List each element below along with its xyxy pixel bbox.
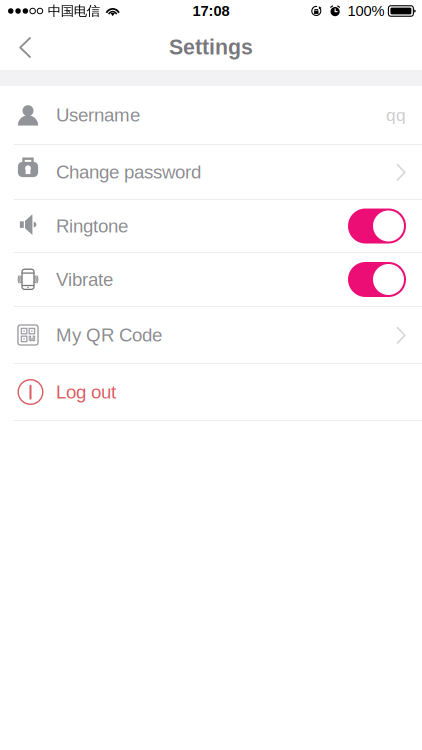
staticText: Vibrate bbox=[56, 269, 113, 290]
button[interactable]: Username bbox=[0, 86, 422, 145]
button[interactable]: Ringtone bbox=[0, 200, 422, 253]
staticText: qq bbox=[386, 105, 406, 125]
staticText: Settings bbox=[169, 35, 253, 59]
staticText: Username bbox=[56, 105, 140, 125]
staticText: Log out bbox=[56, 382, 116, 402]
staticText: My QR Code bbox=[56, 325, 162, 345]
button[interactable]: My QR Code bbox=[0, 307, 422, 364]
button[interactable]: Change password bbox=[0, 145, 422, 200]
button[interactable]: Log out bbox=[0, 364, 422, 421]
staticText: 100% bbox=[347, 3, 384, 19]
staticText: Ringtone bbox=[56, 216, 128, 236]
button[interactable]: Back bbox=[0, 22, 50, 70]
staticText: Change password bbox=[56, 162, 201, 182]
staticText: 中国电信 bbox=[48, 3, 100, 19]
button[interactable]: Vibrate bbox=[0, 253, 422, 307]
staticText: 17:08 bbox=[192, 3, 229, 19]
